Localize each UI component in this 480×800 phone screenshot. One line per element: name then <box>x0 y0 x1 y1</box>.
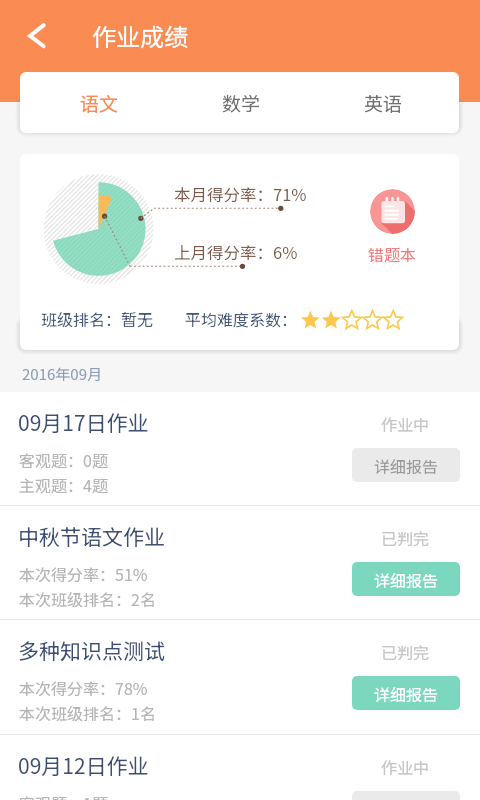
staticText: 本次班级排名：1名 <box>19 701 156 724</box>
staticText: 语文 <box>80 89 119 117</box>
staticText: 数学 <box>222 89 261 117</box>
button[interactable]: 详细报告 <box>352 448 460 482</box>
button[interactable]: 错题本 <box>347 189 437 265</box>
staticText: 本次班级排名：2名 <box>19 587 156 610</box>
button[interactable]: 详细报告 <box>352 562 460 596</box>
button[interactable]: 语文 <box>29 72 170 133</box>
staticText: 上月得分率：6% <box>174 240 298 264</box>
button[interactable]: 多种知识点测试 <box>0 620 480 734</box>
staticText: 本次得分率：51% <box>19 562 148 585</box>
button[interactable]: 09月17日作业 <box>0 392 480 505</box>
staticText: 本月得分率：71% <box>174 182 307 206</box>
staticText: 作业中 <box>381 412 430 435</box>
staticText: 作业中 <box>381 755 430 778</box>
staticText: 多种知识点测试 <box>18 635 165 665</box>
staticText: 作业成绩 <box>92 18 188 53</box>
staticText: 09月12日作业 <box>18 750 149 780</box>
staticText: 已判完 <box>381 526 430 549</box>
button[interactable]: 09月12日作业 <box>0 735 480 800</box>
staticText: 09月17日作业 <box>18 407 149 437</box>
staticText: 客观题：1题 <box>19 791 108 800</box>
staticText: 中秋节语文作业 <box>18 521 165 551</box>
staticText: 平均难度系数： <box>185 307 298 330</box>
staticText: 主观题：4题 <box>19 473 108 496</box>
staticText: 2016年09月 <box>22 363 102 385</box>
staticText: 详细报告 <box>374 568 439 591</box>
button[interactable]: 详细报告 <box>352 676 460 710</box>
staticText: 班级排名：暂无 <box>41 307 154 330</box>
button[interactable]: 数学 <box>170 72 312 133</box>
staticText: 详细报告 <box>374 682 439 705</box>
staticText: 本次得分率：78% <box>19 676 148 699</box>
button[interactable]: 英语 <box>312 72 454 133</box>
button[interactable]: 中秋节语文作业 <box>0 506 480 619</box>
button[interactable]: Back <box>12 14 56 58</box>
staticText: 已判完 <box>381 640 430 663</box>
staticText: 英语 <box>364 89 403 117</box>
staticText: 错题本 <box>368 242 417 265</box>
staticText: 详细报告 <box>374 454 439 477</box>
staticText: 客观题：0题 <box>19 448 108 471</box>
